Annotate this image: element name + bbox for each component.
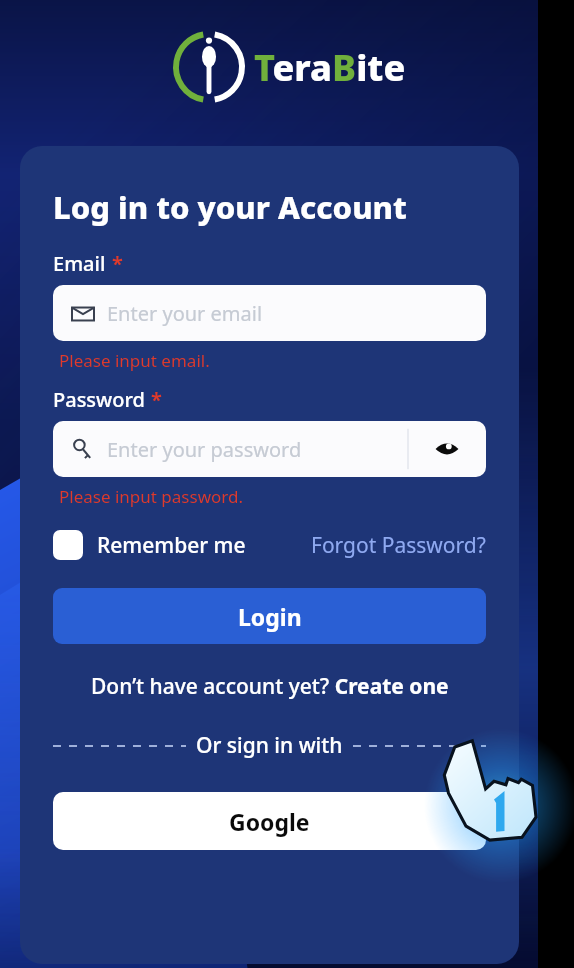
button[interactable]: Remember me [53, 530, 246, 560]
staticText: Forgot Password? [311, 531, 486, 560]
staticText: Log in to your Account [53, 186, 407, 228]
staticText: Email [53, 250, 106, 277]
staticText: * [151, 386, 162, 413]
staticText: Or sign in with [196, 731, 343, 760]
staticText: Login [238, 601, 302, 632]
staticText: Please input email. [59, 349, 210, 372]
staticText: Enter your password [107, 436, 302, 463]
staticText: * [112, 250, 123, 277]
staticText: Remember me [97, 531, 246, 560]
button[interactable]: Enter your password [53, 421, 486, 477]
button[interactable]: Login [53, 588, 486, 644]
staticText: Google [229, 806, 310, 837]
button[interactable]: Forgot Password? [311, 531, 486, 560]
staticText: TeraBite [254, 43, 406, 92]
staticText: Don’t have account yet? Create one [91, 672, 449, 701]
staticText: Please input password. [59, 485, 243, 508]
button[interactable]: Show password [408, 421, 486, 477]
button[interactable]: Enter your email [53, 285, 486, 341]
button[interactable]: Google [53, 792, 486, 850]
button[interactable]: Don’t have account yet? Create one [91, 672, 449, 701]
staticText: Password [53, 386, 145, 413]
staticText: Enter your email [107, 300, 263, 327]
